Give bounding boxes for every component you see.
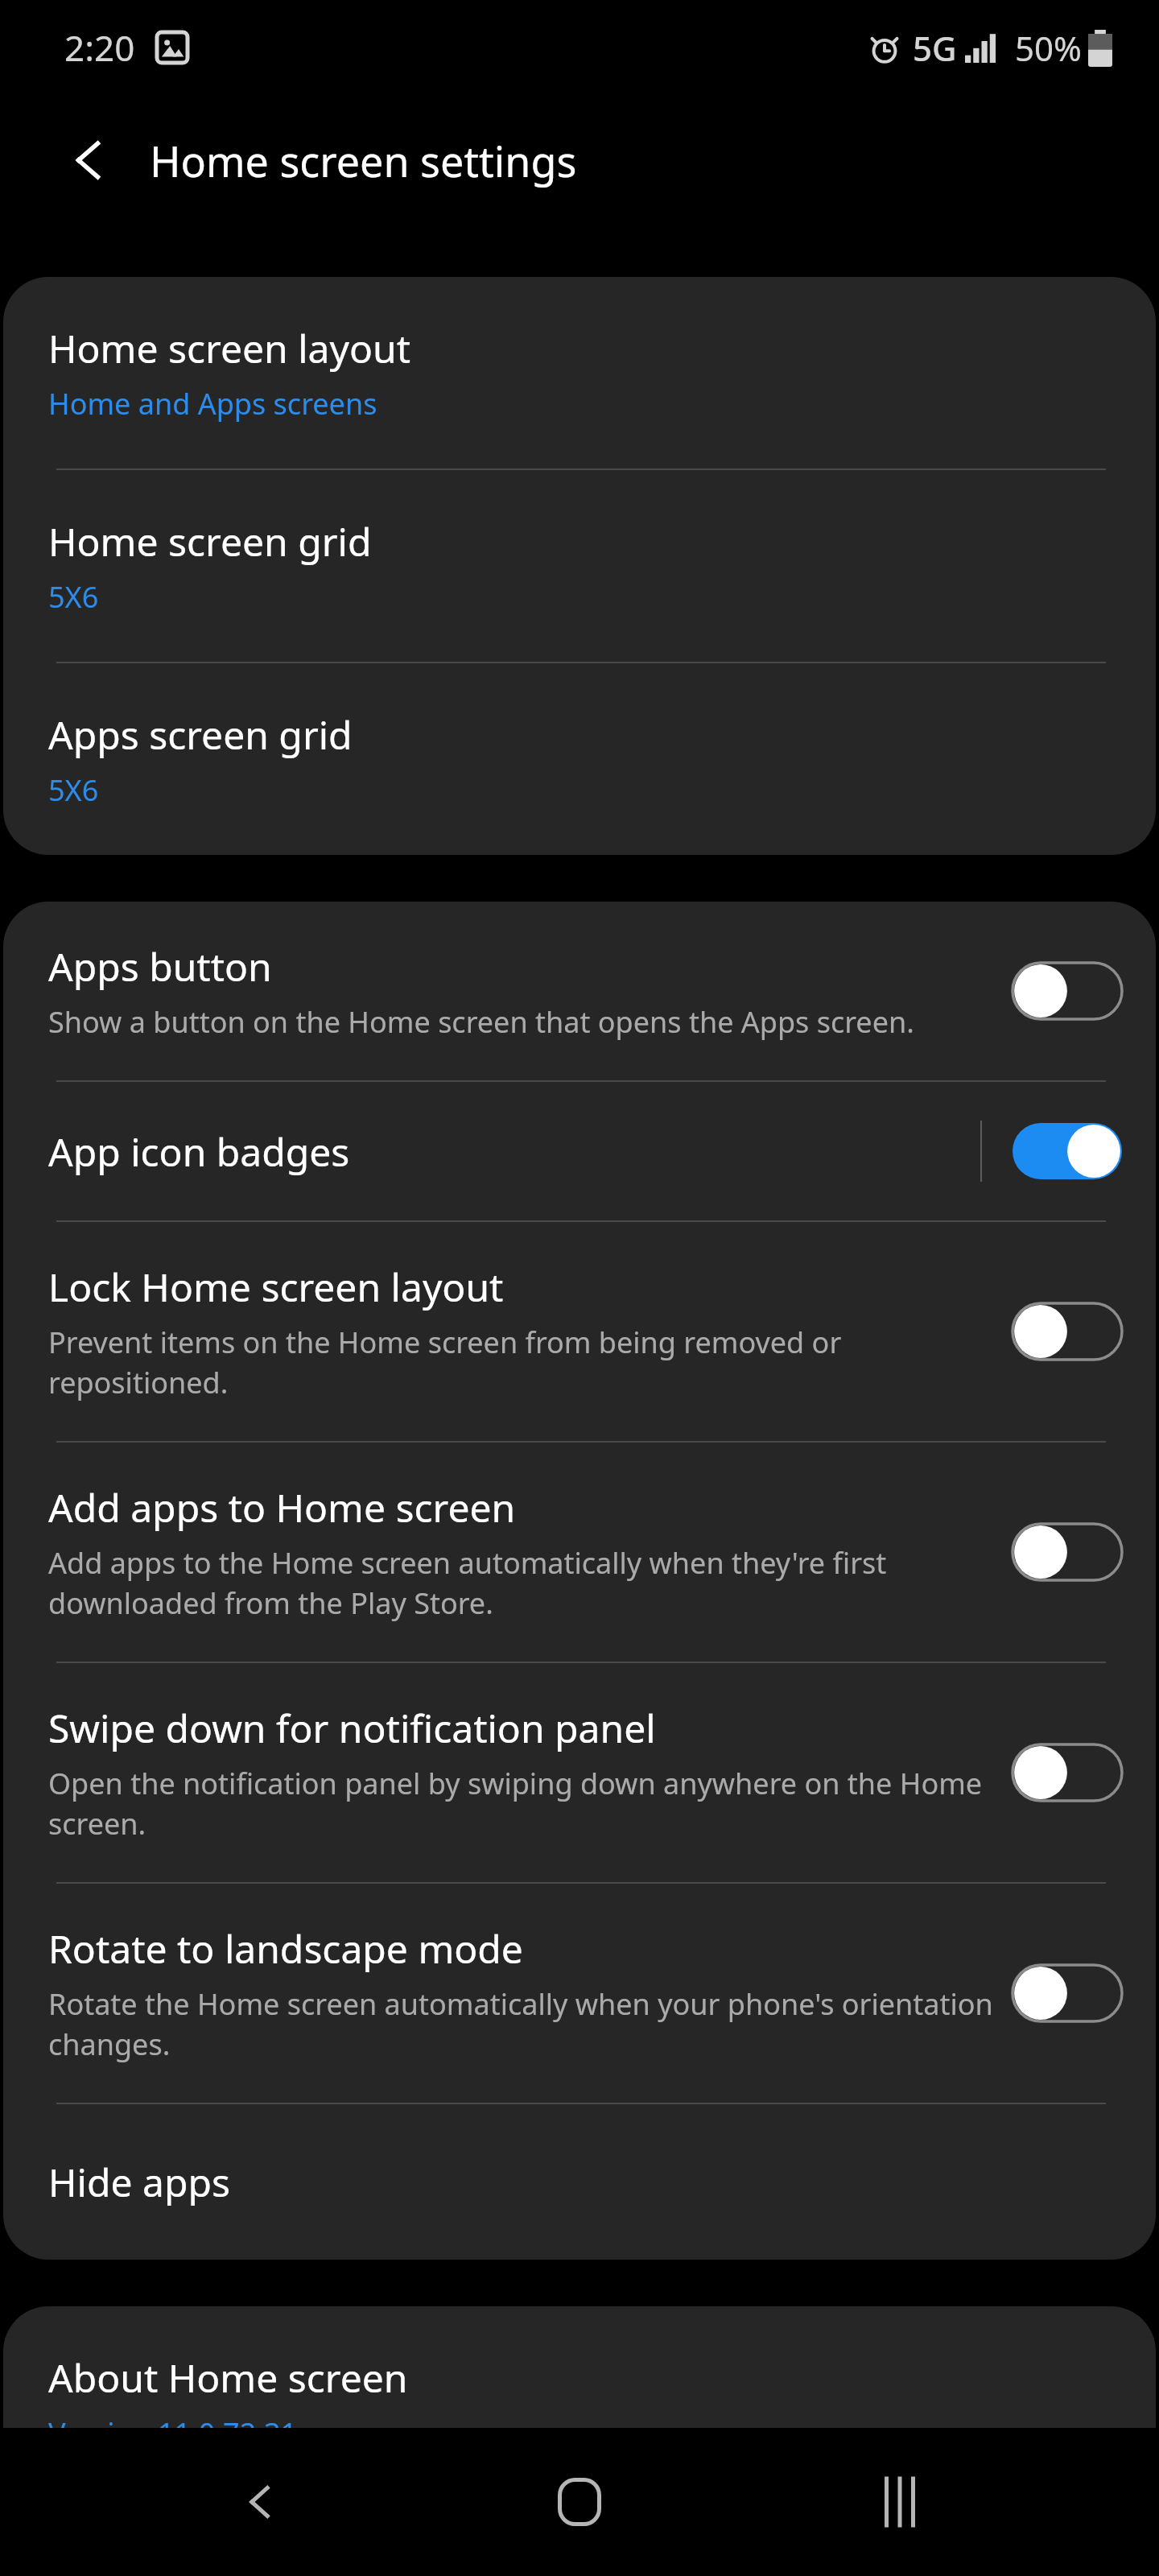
- button[interactable]: Apps button: [3, 902, 1156, 1080]
- staticText: Apps button: [48, 940, 272, 993]
- staticText: 5X6: [48, 770, 99, 810]
- staticText: App icon badges: [48, 1125, 350, 1178]
- button[interactable]: Navigate up: [40, 112, 137, 208]
- staticText: 5G: [913, 25, 957, 71]
- staticText: Rotate to landscape mode: [48, 1922, 523, 1975]
- staticText: Open the notification panel by swiping d…: [48, 1764, 993, 1843]
- staticText: Swipe down for notification panel: [48, 1702, 656, 1754]
- staticText: Apps screen grid: [48, 708, 353, 761]
- staticText: Home screen settings: [150, 132, 577, 189]
- button[interactable]: Rotate to landscape mode: [3, 1884, 1156, 2103]
- staticText: Lock Home screen layout: [48, 1261, 504, 1313]
- button[interactable]: About Home screen: [3, 2306, 1156, 2498]
- staticText: Home screen grid: [48, 515, 372, 568]
- button[interactable]: Off: [1013, 963, 1122, 1019]
- button[interactable]: Back: [200, 2442, 320, 2562]
- staticText: Rotate the Home screen automatically whe…: [48, 1984, 993, 2064]
- staticText: Prevent items on the Home screen from be…: [48, 1323, 993, 1402]
- button[interactable]: Lock Home screen layout: [3, 1222, 1156, 1441]
- staticText: Home and Apps screens: [48, 384, 377, 423]
- button[interactable]: Swipe down for notification panel: [3, 1663, 1156, 1882]
- button[interactable]: Hide apps: [3, 2104, 1156, 2260]
- staticText: 2:20: [64, 23, 135, 72]
- staticText: Hide apps: [48, 2156, 230, 2208]
- button[interactable]: On: [1013, 1123, 1122, 1179]
- button[interactable]: Apps screen grid: [3, 663, 1156, 855]
- staticText: Add apps to Home screen: [48, 1481, 516, 1534]
- staticText: About Home screen: [48, 2351, 408, 2404]
- staticText: Add apps to the Home screen automaticall…: [48, 1543, 993, 1623]
- staticText: Home screen layout: [48, 322, 411, 374]
- button[interactable]: App icon badges: [3, 1082, 1156, 1220]
- staticText: 5X6: [48, 577, 99, 617]
- staticText: 50%: [1015, 25, 1082, 71]
- button[interactable]: Off: [1013, 1965, 1122, 2021]
- button[interactable]: Off: [1013, 1524, 1122, 1580]
- button[interactable]: Home screen grid: [3, 470, 1156, 662]
- button[interactable]: Recent apps: [839, 2442, 960, 2562]
- staticText: Show a button on the Home screen that op…: [48, 1002, 914, 1042]
- button[interactable]: Off: [1013, 1303, 1122, 1360]
- button[interactable]: Add apps to Home screen: [3, 1443, 1156, 1662]
- button[interactable]: Off: [1013, 1744, 1122, 1801]
- button[interactable]: Home screen layout: [3, 277, 1156, 469]
- button[interactable]: Home: [519, 2442, 640, 2562]
- staticText: Version 11.0.72.31: [48, 2413, 298, 2453]
